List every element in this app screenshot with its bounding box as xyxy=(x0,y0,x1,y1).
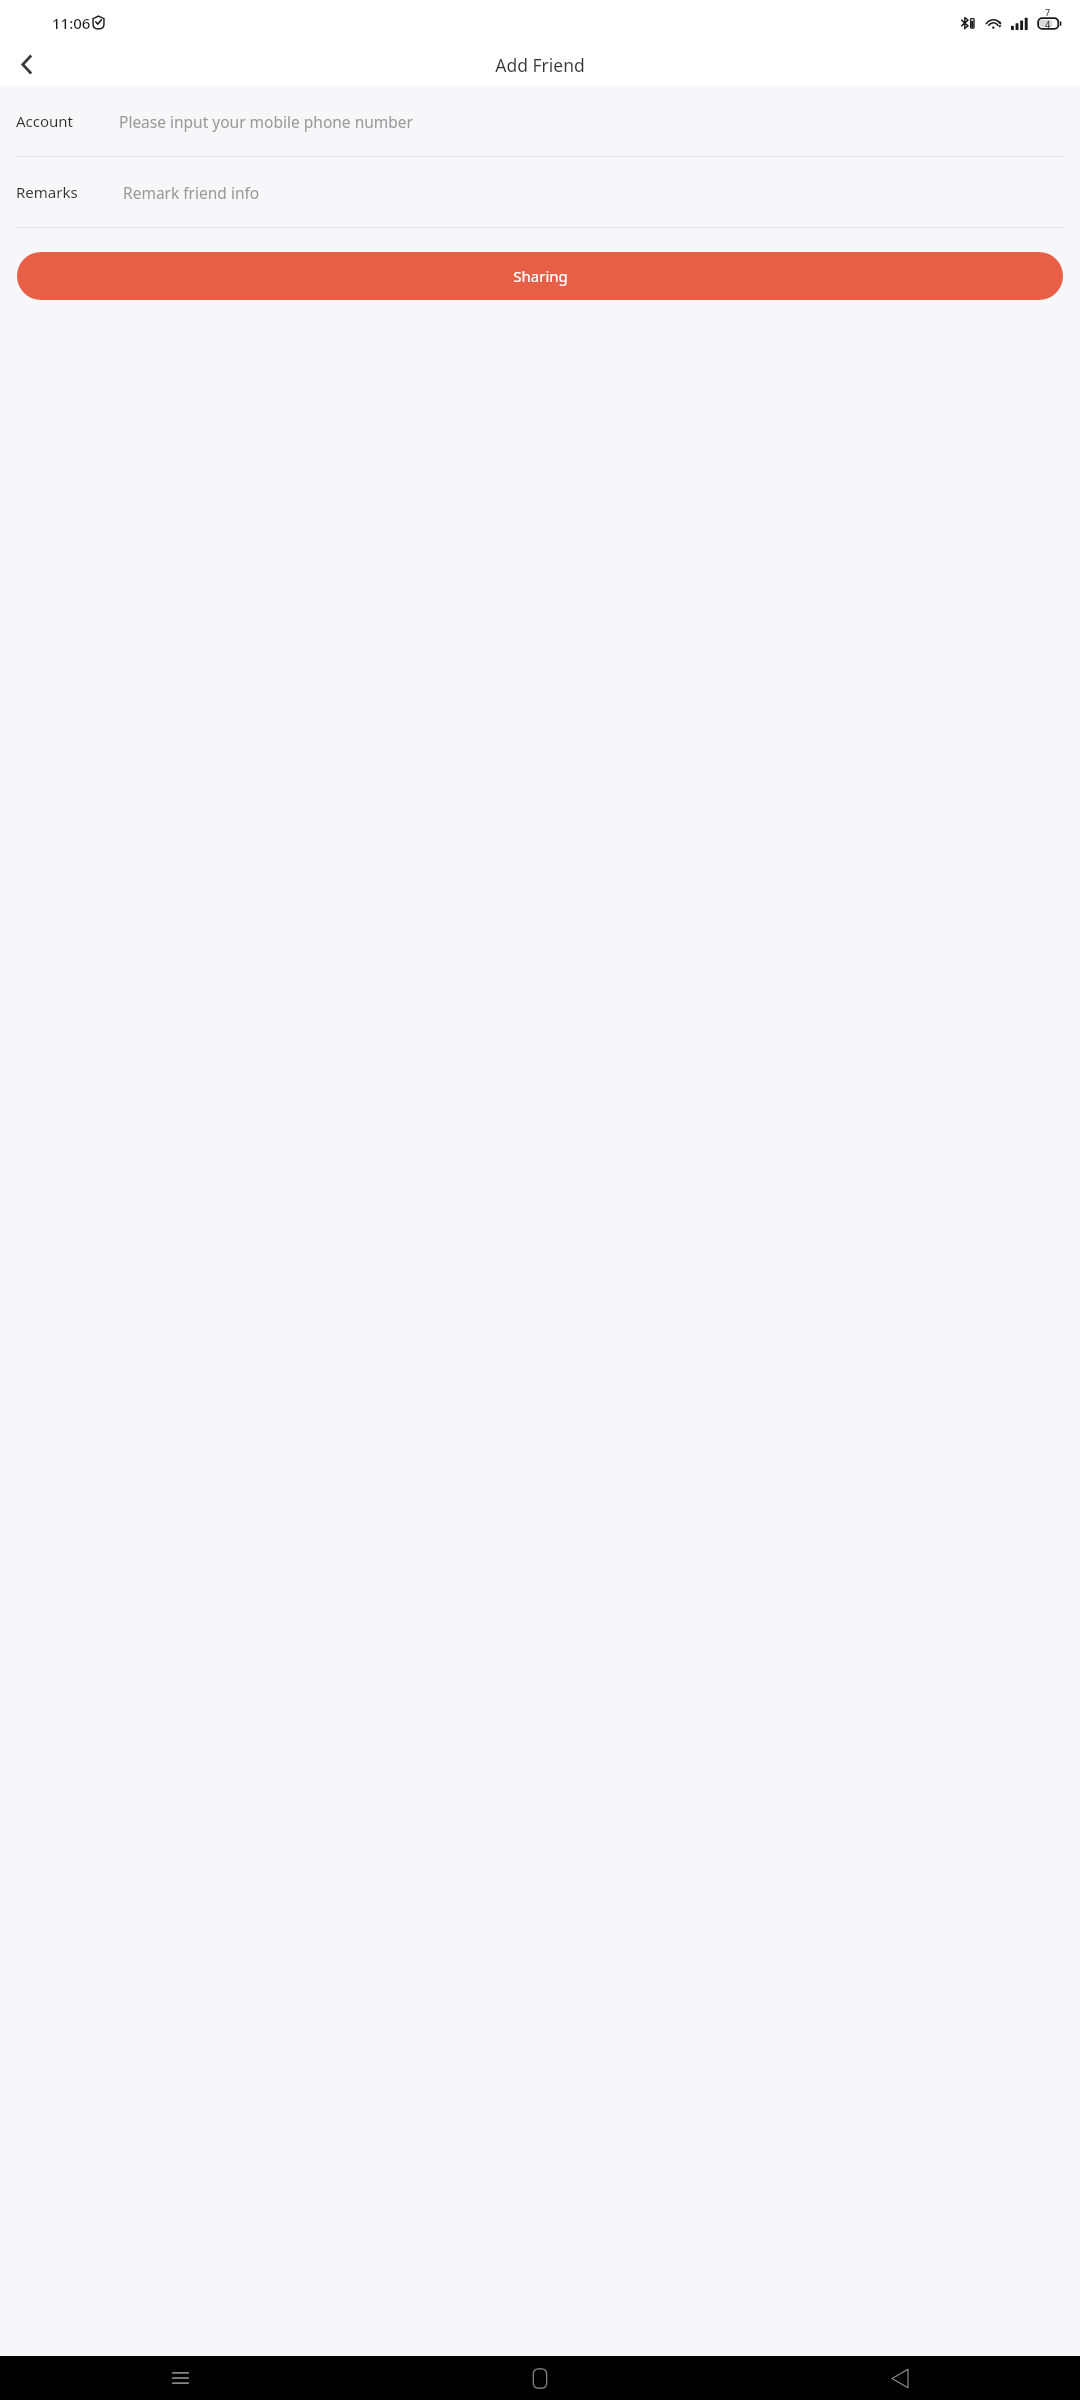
staticText: Account xyxy=(16,111,74,131)
button[interactable]: Back xyxy=(0,43,52,86)
button[interactable]: Recent apps xyxy=(0,2356,360,2400)
staticText: Please input your mobile phone number xyxy=(119,111,413,132)
staticText: Sharing xyxy=(513,266,568,286)
button[interactable]: Account xyxy=(0,86,1080,156)
button[interactable]: Back xyxy=(720,2356,1080,2400)
button[interactable]: Sharing xyxy=(17,252,1063,300)
staticText: Remark friend info xyxy=(123,182,260,203)
staticText: Add Friend xyxy=(495,53,585,77)
button[interactable]: Remarks xyxy=(0,157,1080,227)
button[interactable]: Home xyxy=(360,2356,720,2400)
staticText: 11:06 xyxy=(52,13,91,33)
staticText: Remarks xyxy=(16,182,78,202)
